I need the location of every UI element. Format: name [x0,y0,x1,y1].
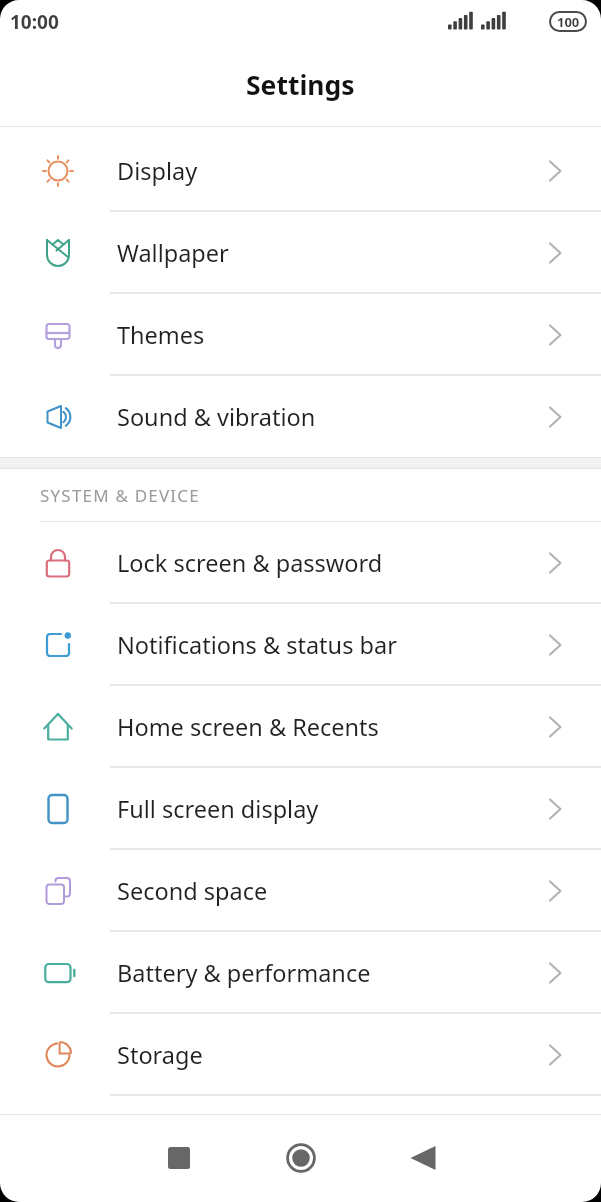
button[interactable]: Battery & performance [0,932,601,1014]
staticText: Sound & vibration [117,401,316,433]
button[interactable]: Storage [0,1014,601,1096]
button[interactable]: Second space [0,850,601,932]
button[interactable]: Lock screen & password [0,522,601,604]
staticText: Full screen display [117,793,319,825]
button[interactable]: Sound & vibration [0,376,601,457]
button[interactable] [277,1134,325,1182]
button[interactable] [399,1134,447,1182]
staticText: Second space [117,875,268,907]
button[interactable]: Home screen & Recents [0,686,601,768]
staticText: 10:00 [10,9,59,35]
button[interactable]: Themes [0,294,601,376]
staticText: Lock screen & password [117,547,383,579]
staticText: Display [117,155,198,187]
staticText: 100 [557,13,580,31]
staticText: Settings [246,67,355,103]
button[interactable]: Full screen display [0,768,601,850]
staticText: SYSTEM & DEVICE [40,484,200,507]
staticText: Battery & performance [117,957,371,989]
staticText: Notifications & status bar [117,629,397,661]
staticText: Themes [117,319,205,351]
button[interactable]: Notifications & status bar [0,604,601,686]
button[interactable] [155,1134,203,1182]
staticText: Wallpaper [117,237,229,269]
staticText: Storage [117,1039,203,1071]
button[interactable]: Display [0,130,601,212]
staticText: Home screen & Recents [117,711,379,743]
button[interactable]: Wallpaper [0,212,601,294]
